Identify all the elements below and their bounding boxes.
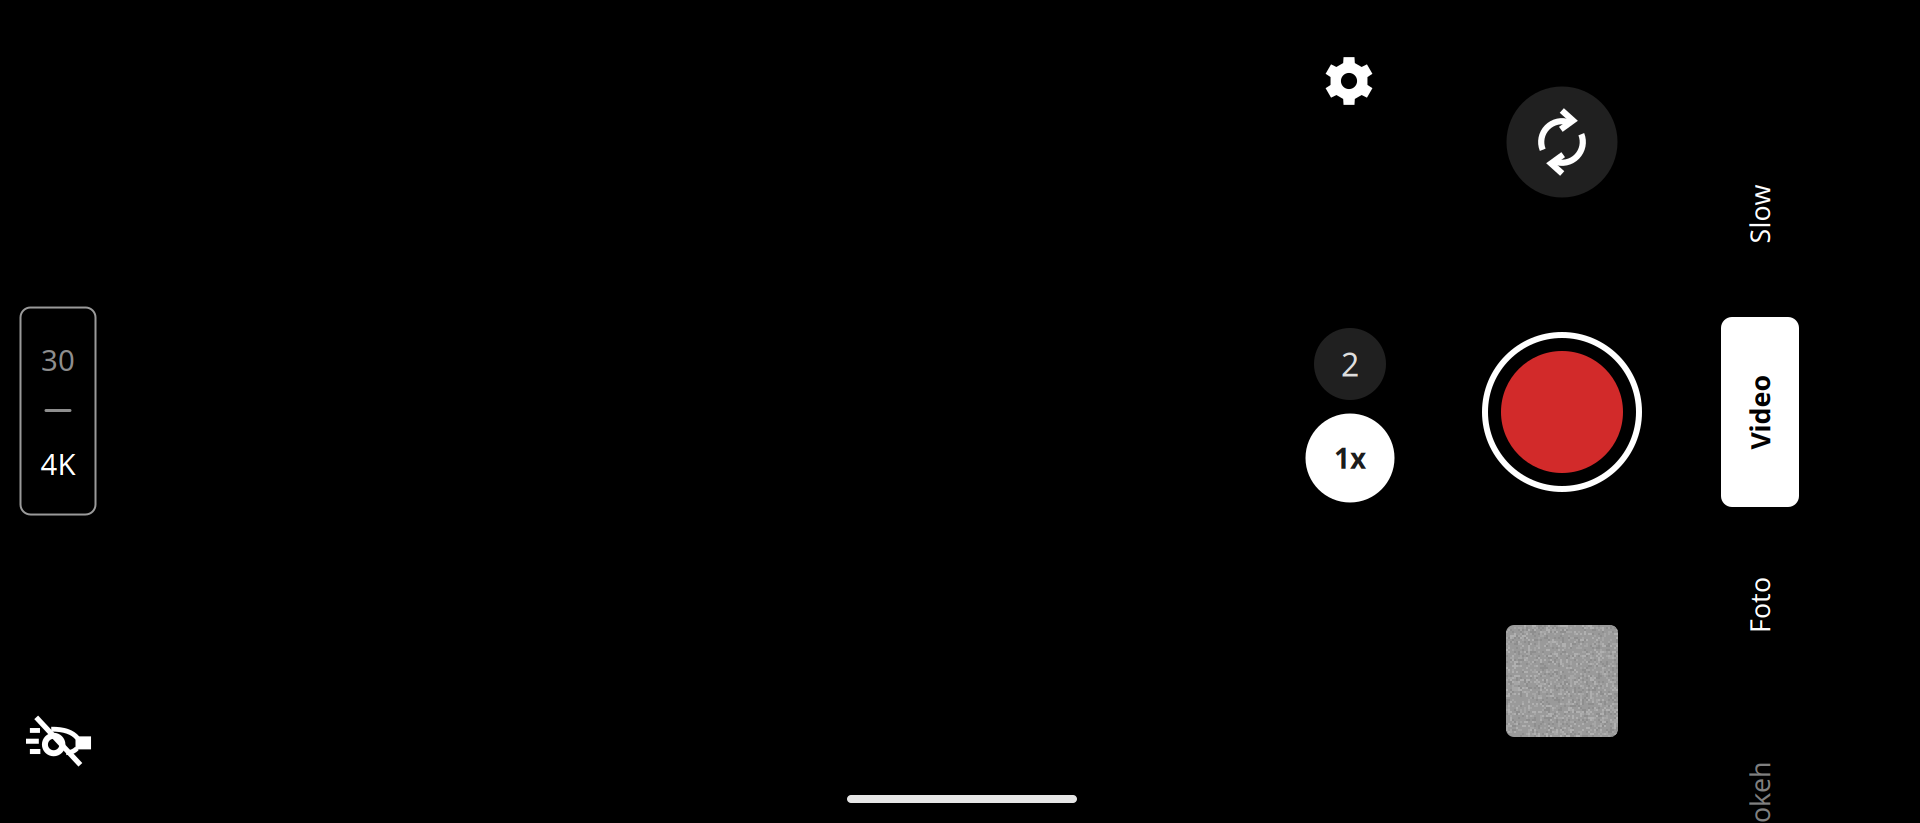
button[interactable]: Flash off: [16, 705, 102, 779]
button[interactable]: Switch camera: [1506, 86, 1617, 197]
staticText: Foto: [1732, 587, 1788, 623]
button[interactable]: Video format: [20, 307, 95, 514]
button[interactable]: Record: [1481, 331, 1643, 493]
staticText: Video: [1722, 394, 1797, 430]
button[interactable]: Photo library: [1506, 625, 1618, 737]
staticText: 30: [41, 340, 75, 379]
staticText: Slow: [1730, 196, 1789, 232]
button[interactable]: Slow: [1705, 116, 1815, 312]
staticText: Bokeh: [1721, 783, 1799, 819]
button[interactable]: 2: [1314, 328, 1386, 400]
button[interactable]: 1x: [1305, 413, 1394, 502]
button[interactable]: Bokeh: [1705, 703, 1815, 823]
button[interactable]: Foto: [1705, 507, 1815, 703]
staticText: 2: [1341, 343, 1359, 385]
staticText: 1x: [1334, 439, 1366, 477]
staticText: 4K: [40, 444, 75, 483]
button[interactable]: Video: [1705, 314, 1815, 510]
button[interactable]: Settings: [1311, 43, 1387, 119]
